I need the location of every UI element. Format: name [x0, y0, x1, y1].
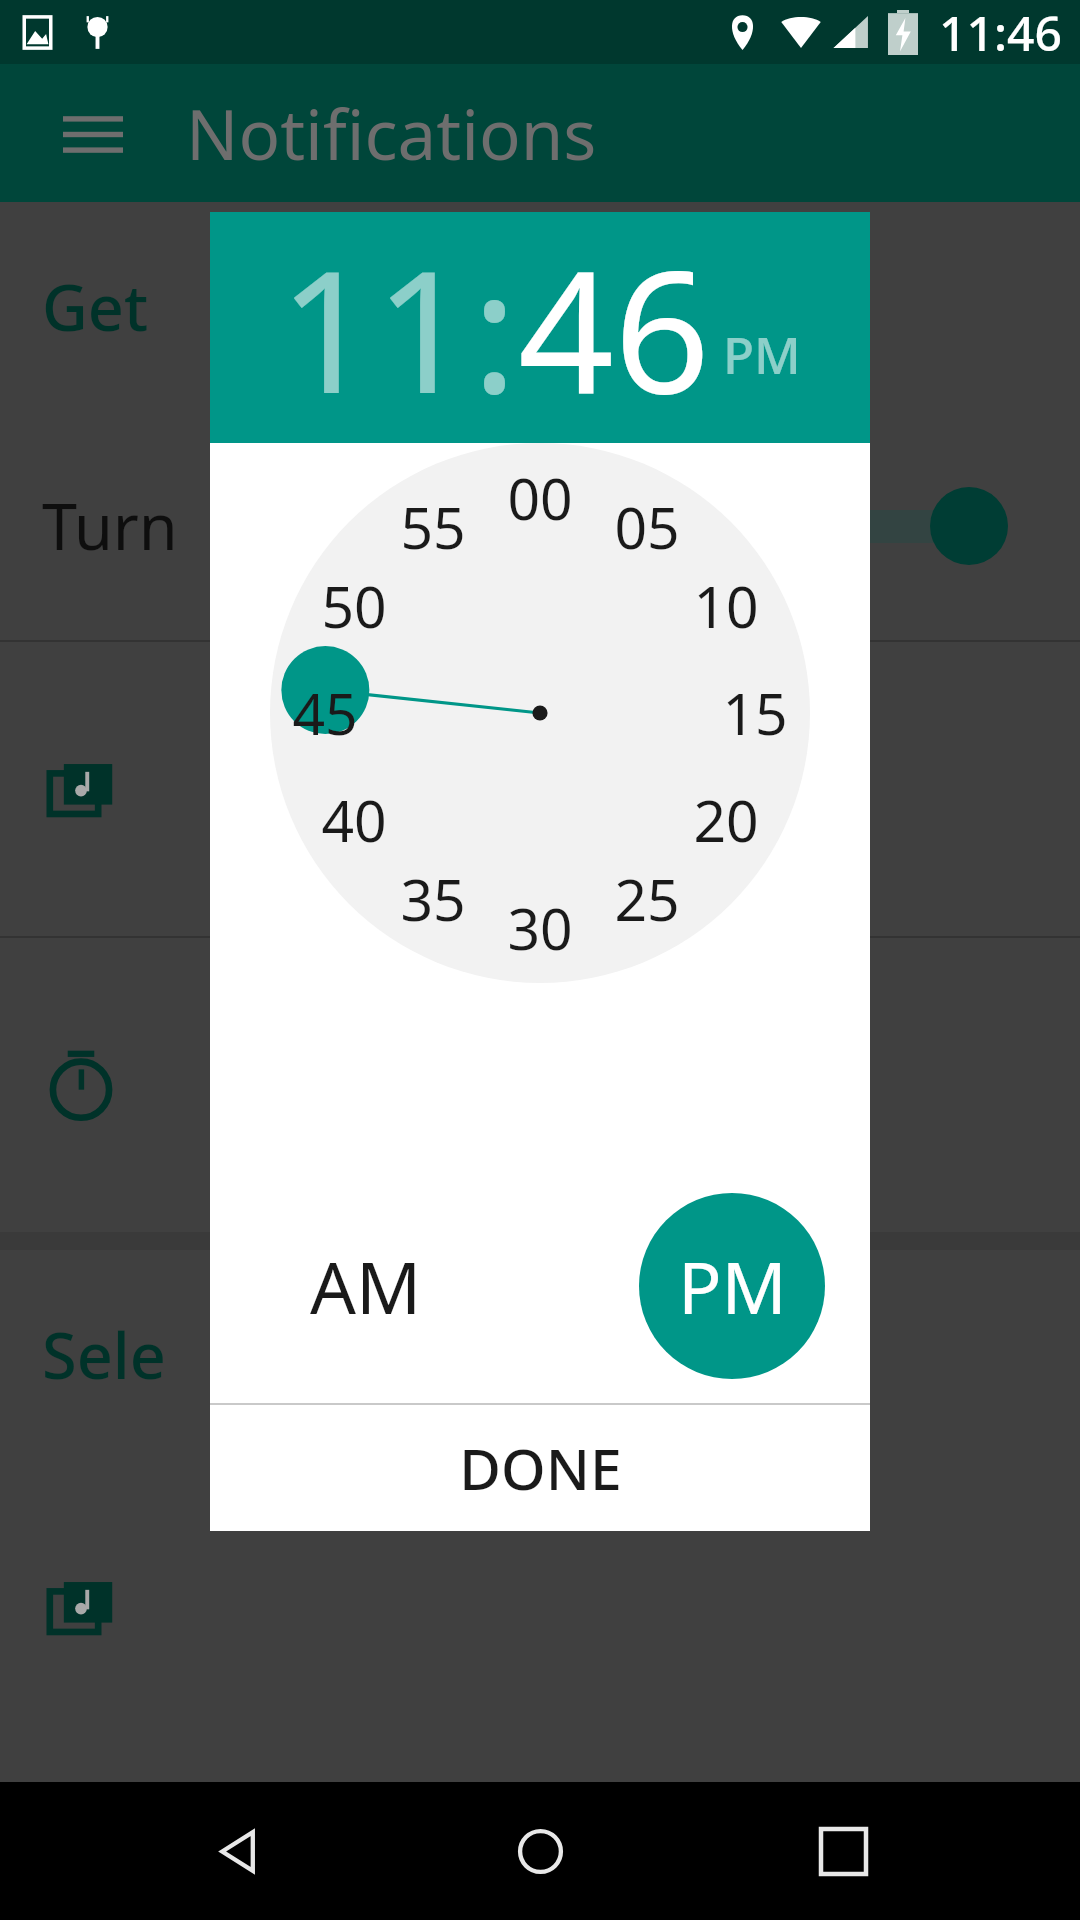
staticText: 55	[400, 488, 466, 566]
button[interactable]: PM	[639, 1193, 825, 1379]
staticText: PM	[678, 1237, 787, 1335]
staticText: Get	[42, 264, 149, 350]
button[interactable]: 10	[681, 561, 771, 651]
button[interactable]: AM	[276, 1196, 456, 1376]
button[interactable]: Recent apps	[777, 1785, 909, 1917]
button[interactable]: 30	[495, 883, 585, 973]
staticText: 35	[400, 860, 466, 938]
button[interactable]: 35	[388, 854, 478, 944]
staticText: :	[472, 213, 518, 442]
button[interactable]: 11	[279, 213, 472, 442]
staticText: DONE	[459, 1429, 622, 1507]
staticText: 45	[292, 674, 358, 752]
button[interactable]	[0, 1460, 1080, 1754]
button[interactable]	[0, 642, 1080, 936]
staticText: 05	[614, 488, 680, 566]
button[interactable]: 40	[309, 775, 399, 865]
staticText: 50	[321, 567, 387, 645]
staticText: 30	[507, 889, 573, 967]
button[interactable]: 00	[495, 453, 585, 543]
button[interactable]: 46	[518, 213, 711, 442]
button[interactable]: 25	[602, 854, 692, 944]
button[interactable]: Toggle	[930, 487, 1008, 565]
button[interactable]: 45	[280, 668, 370, 758]
button[interactable]: 15	[710, 668, 800, 758]
button[interactable]: Open navigation menu	[42, 82, 144, 184]
staticText: AM	[310, 1237, 422, 1335]
staticText: 40	[321, 781, 387, 859]
button[interactable]: Home	[474, 1785, 606, 1917]
staticText: 20	[693, 781, 759, 859]
staticText: Sele	[42, 1312, 166, 1398]
button[interactable]: DONE	[210, 1405, 870, 1531]
button[interactable]: 50	[309, 561, 399, 651]
staticText: 11:46	[939, 0, 1062, 64]
staticText: 00	[507, 459, 573, 537]
staticText: 25	[614, 860, 680, 938]
staticText: Turn	[42, 483, 178, 569]
staticText: Notifications	[186, 86, 597, 180]
button[interactable]: 20	[681, 775, 771, 865]
button[interactable]: Turn	[0, 412, 1080, 640]
button[interactable]	[0, 938, 1080, 1232]
staticText: 10	[693, 567, 759, 645]
button[interactable]: 55	[388, 482, 478, 572]
staticText: 15	[722, 674, 788, 752]
button[interactable]: 05	[602, 482, 692, 572]
button[interactable]: Back	[171, 1785, 303, 1917]
staticText: PM	[723, 319, 801, 388]
